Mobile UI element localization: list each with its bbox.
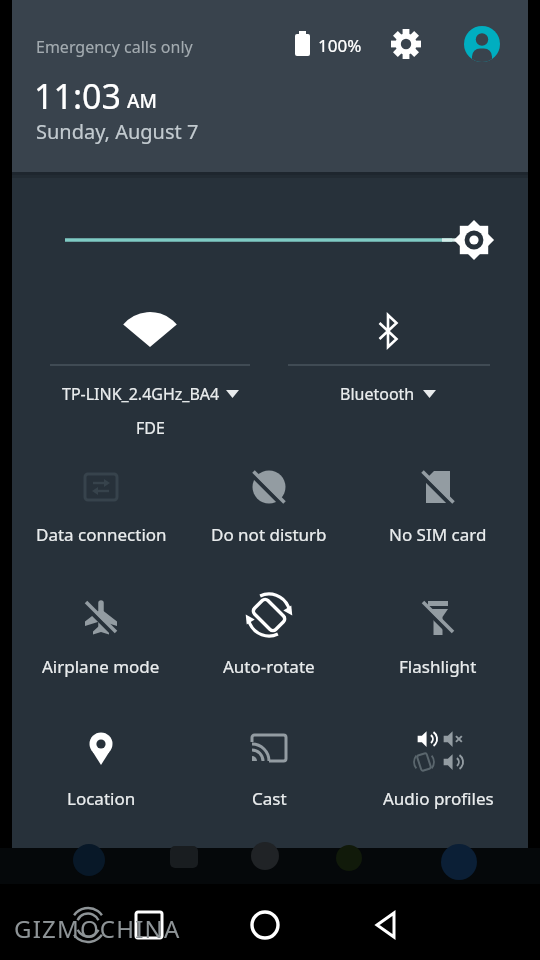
button[interactable]: Location [16, 719, 186, 819]
staticText: GIZMOCHINA [14, 912, 181, 945]
staticText: Emergency calls only [36, 36, 193, 58]
button[interactable]: Data connection [16, 455, 186, 555]
staticText: 100% [318, 34, 362, 57]
button[interactable] [453, 219, 495, 261]
button[interactable]: TP-LINK_2.4GHz_BA4 [30, 295, 270, 445]
staticText: AM [127, 88, 157, 114]
staticText: 11:03 [34, 73, 121, 119]
button[interactable]: No SIM card [353, 455, 523, 555]
staticText: Do not disturb [211, 523, 327, 546]
button[interactable]: Cast [184, 719, 354, 819]
staticText: FDE [136, 417, 165, 439]
staticText: Bluetooth [340, 383, 415, 405]
button[interactable]: Auto-rotate [184, 587, 354, 687]
button[interactable]: Do not disturb [184, 455, 354, 555]
button[interactable]: Flashlight [353, 587, 523, 687]
button[interactable]: Audio profiles [353, 719, 523, 819]
button[interactable] [128, 904, 170, 946]
button[interactable]: Bluetooth [268, 295, 508, 445]
staticText: Audio profiles [383, 787, 494, 810]
staticText: Flashlight [399, 655, 477, 678]
button[interactable] [365, 904, 407, 946]
button[interactable] [390, 28, 422, 60]
staticText: Data connection [36, 523, 167, 546]
staticText: Auto-rotate [223, 655, 315, 678]
staticText: Airplane mode [42, 655, 160, 678]
button[interactable] [462, 24, 502, 64]
button[interactable] [244, 904, 286, 946]
button[interactable]: Airplane mode [16, 587, 186, 687]
staticText: Sunday, August 7 [36, 118, 199, 145]
staticText: TP-LINK_2.4GHz_BA4 [62, 383, 220, 405]
staticText: Cast [252, 787, 287, 810]
staticText: Location [67, 787, 136, 810]
staticText: No SIM card [389, 523, 487, 546]
